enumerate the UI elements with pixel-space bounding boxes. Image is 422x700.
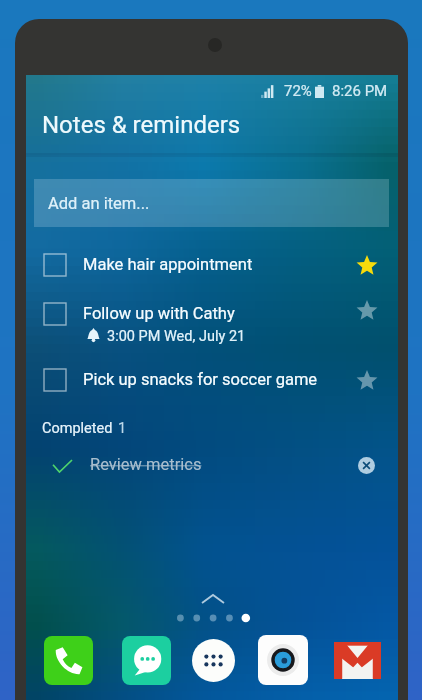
button[interactable]: Follow up with Cathy bbox=[26, 289, 398, 355]
button[interactable]: Unstar bbox=[356, 254, 378, 276]
staticText: Completed bbox=[42, 420, 113, 437]
button[interactable]: Gmail bbox=[334, 642, 381, 679]
staticText: 72% bbox=[284, 82, 312, 100]
staticText: 8:26 PM bbox=[332, 82, 388, 100]
staticText: 3:00 PM Wed, July 21 bbox=[107, 328, 246, 345]
button[interactable]: Add an item... bbox=[34, 179, 389, 227]
button[interactable]: Star bbox=[356, 299, 378, 321]
button[interactable]: Camera bbox=[258, 635, 308, 685]
button[interactable]: Phone bbox=[44, 636, 93, 685]
button[interactable]: Make hair appointment bbox=[26, 240, 398, 289]
staticText: Review metrics bbox=[90, 455, 202, 474]
staticText: Notes & reminders bbox=[42, 111, 241, 139]
button[interactable]: All apps bbox=[192, 639, 235, 682]
staticText: 1 bbox=[118, 420, 127, 437]
button[interactable]: Pick up snacks for soccer game bbox=[26, 355, 398, 404]
staticText: Make hair appointment bbox=[83, 255, 253, 274]
staticText: Follow up with Cathy bbox=[83, 304, 235, 323]
button[interactable]: Remove bbox=[358, 457, 375, 474]
button[interactable]: Star bbox=[356, 369, 378, 391]
button[interactable]: Messages bbox=[122, 636, 171, 685]
staticText: Add an item... bbox=[48, 194, 150, 213]
staticText: Pick up snacks for soccer game bbox=[83, 370, 318, 389]
button[interactable]: Review metrics bbox=[26, 450, 398, 490]
